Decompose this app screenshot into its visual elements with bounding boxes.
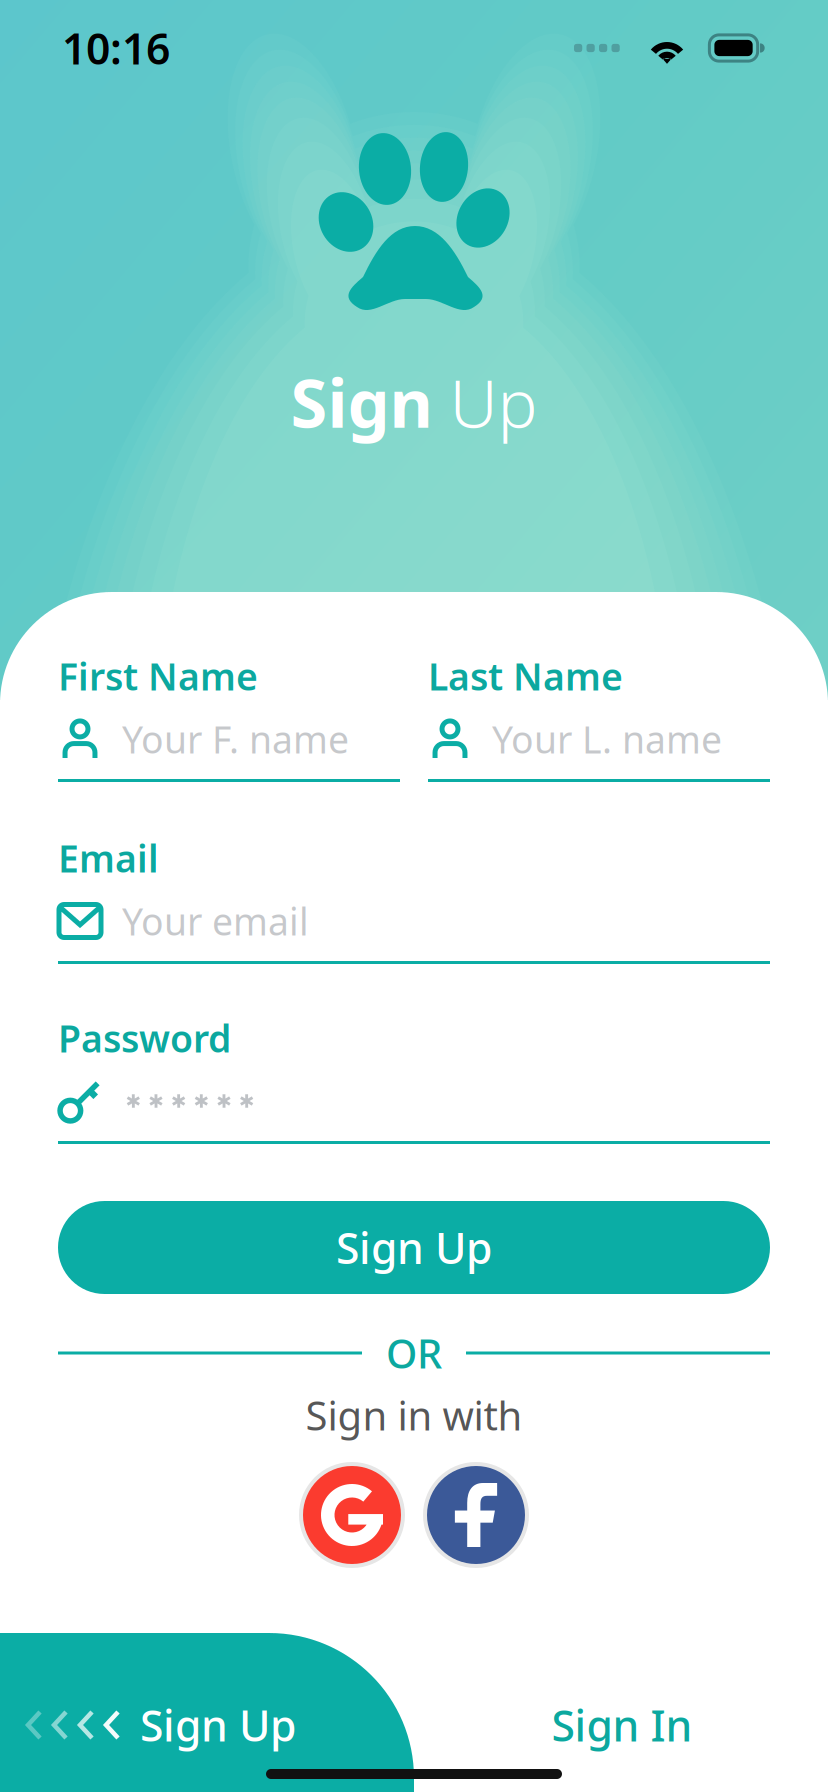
staticText: 10:16 [62,20,170,76]
button[interactable]: Sign in with Facebook [423,1462,529,1568]
button[interactable]: Sign in with Google [299,1462,405,1568]
staticText: Sign In [551,1697,692,1753]
staticText: Sign [290,358,432,446]
staticText: Up [432,358,537,446]
staticText: Sign Up [140,1697,296,1753]
staticText: Your L. name [492,714,722,764]
staticText: Your F. name [122,714,349,764]
staticText: First Name [58,651,258,701]
staticText: Email [58,833,159,883]
staticText: Your email [122,896,309,946]
button[interactable]: Sign Up [0,1633,414,1792]
staticText: Sign Up [336,1219,492,1276]
staticText: Password [58,1013,231,1063]
button[interactable]: Sign Up [58,1201,770,1294]
staticText: Last Name [428,651,623,701]
staticText: OR [386,1326,442,1379]
staticText: Sign in with [305,1388,522,1441]
button[interactable]: Sign In [534,1703,710,1747]
